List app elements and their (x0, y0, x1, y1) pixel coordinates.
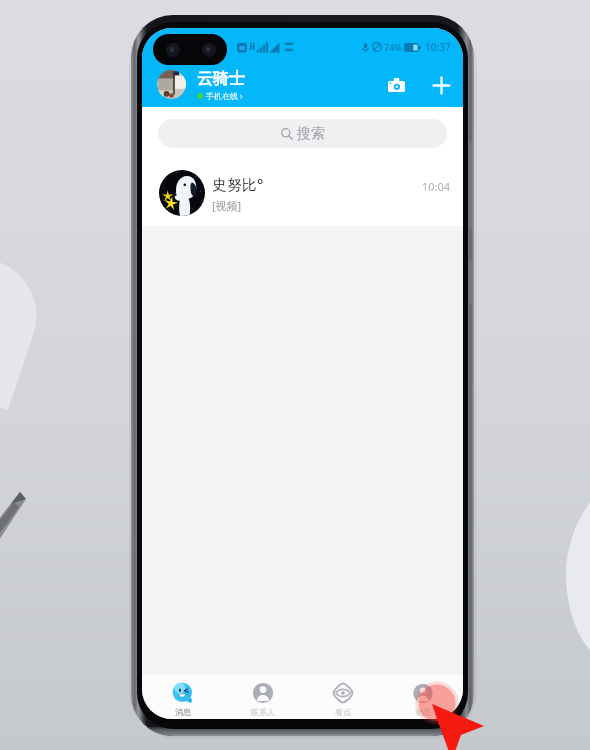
staticText: 10:37 (425, 40, 451, 54)
button[interactable]: 消息 (142, 675, 223, 719)
button[interactable]: 史努比° (142, 159, 463, 226)
button[interactable]: 搜索 (158, 119, 447, 148)
button[interactable]: Camera (381, 70, 411, 100)
button[interactable]: My profile (157, 70, 186, 99)
staticText: 手机在线 › (206, 90, 243, 101)
staticText: 史努比° (212, 174, 264, 194)
button[interactable]: Add (426, 70, 456, 100)
staticText: 联系人 (251, 707, 275, 717)
staticText: 10:04 (422, 179, 451, 194)
staticText: 消息 (175, 707, 191, 717)
staticText: 74% (384, 41, 402, 53)
button[interactable]: 动态 (383, 675, 463, 719)
staticText: [视频] (212, 198, 242, 213)
button[interactable]: 看点 (303, 675, 383, 719)
staticText: 看点 (335, 707, 351, 717)
staticText: 动态 (415, 707, 431, 717)
staticText: 云骑士 (197, 69, 245, 89)
button[interactable]: 联系人 (223, 675, 303, 719)
staticText: 搜索 (297, 125, 325, 143)
